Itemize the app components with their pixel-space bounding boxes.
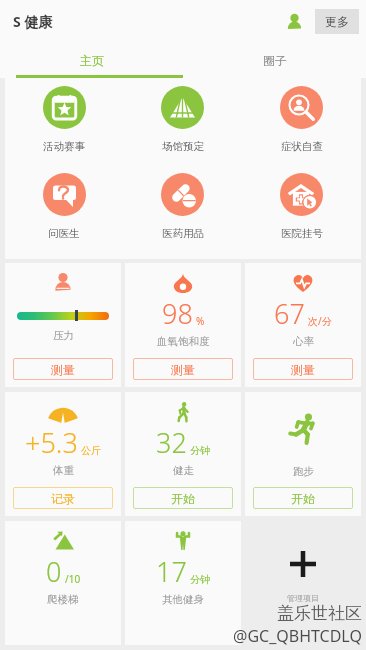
staticText: 分钟 [190,444,210,457]
button[interactable]: 医药用品 [123,165,242,252]
button[interactable]: 活动赛事 [5,78,123,165]
staticText: 主页 [80,53,104,68]
button[interactable]: 32 [125,392,241,516]
staticText: 症状自查 [281,140,323,153]
staticText: @GC_QBHTCDLQ [233,625,362,647]
staticText: 次/分 [308,314,332,328]
button[interactable]: 记录 [13,487,113,509]
button[interactable]: 0 [5,521,121,645]
staticText: 公斤 [81,444,101,457]
staticText: +5.3 [25,424,78,461]
button[interactable]: 问医生 [5,165,123,252]
button[interactable]: 医院挂号 [242,165,361,252]
staticText: 其他健身 [162,593,204,606]
staticText: 盖乐世社区 [277,603,362,624]
staticText: 活动赛事 [43,140,85,153]
staticText: 跑步 [293,465,314,478]
staticText: 67 [274,295,305,332]
button[interactable]: 管理项目 [245,521,361,645]
button[interactable]: 测量 [133,358,233,380]
button[interactable]: 更多 [315,9,359,34]
staticText: 记录 [51,491,75,506]
staticText: 圈子 [263,53,287,68]
button[interactable]: 开始 [253,487,353,509]
staticText: % [196,314,205,328]
staticText: 开始 [171,491,195,506]
button[interactable]: 症状自查 [242,78,361,165]
staticText: 体重 [53,464,74,477]
staticText: 场馆预定 [162,140,204,153]
button[interactable]: 测量 [13,358,113,380]
button[interactable]: 跑步 [245,392,361,516]
staticText: /10 [65,572,81,586]
staticText: 问医生 [48,227,80,240]
button[interactable]: Profile [278,5,310,37]
button[interactable]: 17 [125,521,241,645]
button[interactable]: 圈子 [183,42,366,78]
staticText: 测量 [291,362,315,377]
staticText: 0 [46,553,62,590]
staticText: 分钟 [190,573,210,586]
button[interactable]: +5.3 [5,392,121,516]
button[interactable]: 场馆预定 [123,78,242,165]
staticText: 32 [156,424,187,461]
staticText: 98 [162,295,193,332]
button[interactable]: 98 [125,263,241,387]
button[interactable]: 67 [245,263,361,387]
button[interactable]: 压力 [5,263,121,387]
staticText: 医药用品 [162,227,204,240]
staticText: 心率 [293,335,314,348]
staticText: 17 [156,553,187,590]
staticText: 健走 [173,464,194,477]
button[interactable]: 开始 [133,487,233,509]
staticText: 测量 [51,362,75,377]
staticText: 开始 [291,491,315,506]
staticText: 测量 [171,362,195,377]
staticText: 压力 [53,329,74,342]
button[interactable]: 主页 [0,42,183,78]
staticText: 更多 [325,14,349,29]
button[interactable]: 测量 [253,358,353,380]
staticText: 医院挂号 [281,227,323,240]
staticText: 管理项目 [287,593,319,603]
staticText: 血氧饱和度 [157,335,210,348]
staticText: 爬楼梯 [47,593,79,606]
staticText: S 健康 [13,12,53,31]
